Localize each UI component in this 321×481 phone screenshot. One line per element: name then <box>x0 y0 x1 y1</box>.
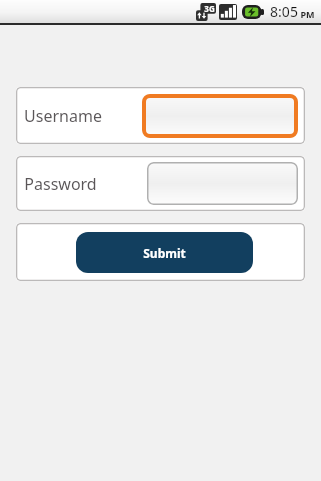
staticText: 3G <box>204 3 215 14</box>
staticText: Submit <box>143 245 186 261</box>
staticText: Username <box>24 105 102 127</box>
other: Battery charging <box>242 5 264 19</box>
staticText: PM <box>300 8 315 20</box>
button[interactable]: Password <box>16 156 305 211</box>
staticText: 8:05 <box>270 2 298 21</box>
button[interactable]: Username <box>16 87 305 144</box>
button[interactable] <box>142 94 298 138</box>
staticText: Password <box>24 173 97 195</box>
other: Signal strength <box>219 3 237 20</box>
button[interactable]: Submit <box>76 232 253 273</box>
other: 3G data <box>196 3 216 21</box>
button[interactable] <box>147 162 298 205</box>
